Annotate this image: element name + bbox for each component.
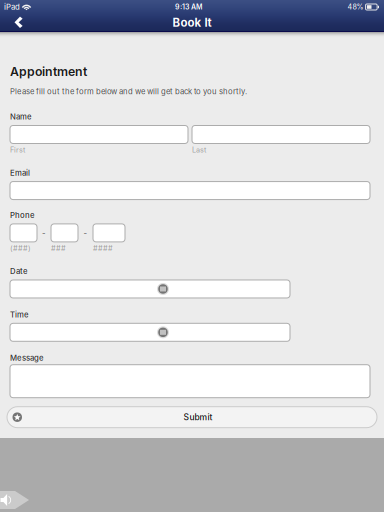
staticText: First xyxy=(10,145,25,154)
staticText: Last xyxy=(192,145,206,154)
button[interactable]: Choose Date xyxy=(10,280,290,298)
staticText: - xyxy=(42,228,46,238)
staticText: Please fill out the form below and we wi… xyxy=(10,87,247,96)
staticText: Email xyxy=(10,168,30,178)
staticText: iPad xyxy=(4,2,20,12)
staticText: Phone xyxy=(10,210,35,220)
button[interactable]: Submit xyxy=(7,407,377,428)
button[interactable]: Choose Time xyxy=(10,323,290,341)
staticText: 9:13 AM xyxy=(175,3,203,11)
staticText: Time xyxy=(10,310,29,319)
staticText: (###) xyxy=(10,244,31,253)
staticText: Name xyxy=(10,112,32,121)
staticText: Appointment xyxy=(10,64,87,79)
staticText: ### xyxy=(51,244,66,253)
staticText: Submit xyxy=(183,412,212,422)
staticText: - xyxy=(83,228,87,238)
staticText: #### xyxy=(93,244,113,253)
staticText: Message xyxy=(10,353,44,363)
staticText: 48% xyxy=(348,3,364,11)
button[interactable]: Back xyxy=(0,14,34,31)
staticText: Book It xyxy=(172,16,211,29)
staticText: Date xyxy=(10,267,28,276)
